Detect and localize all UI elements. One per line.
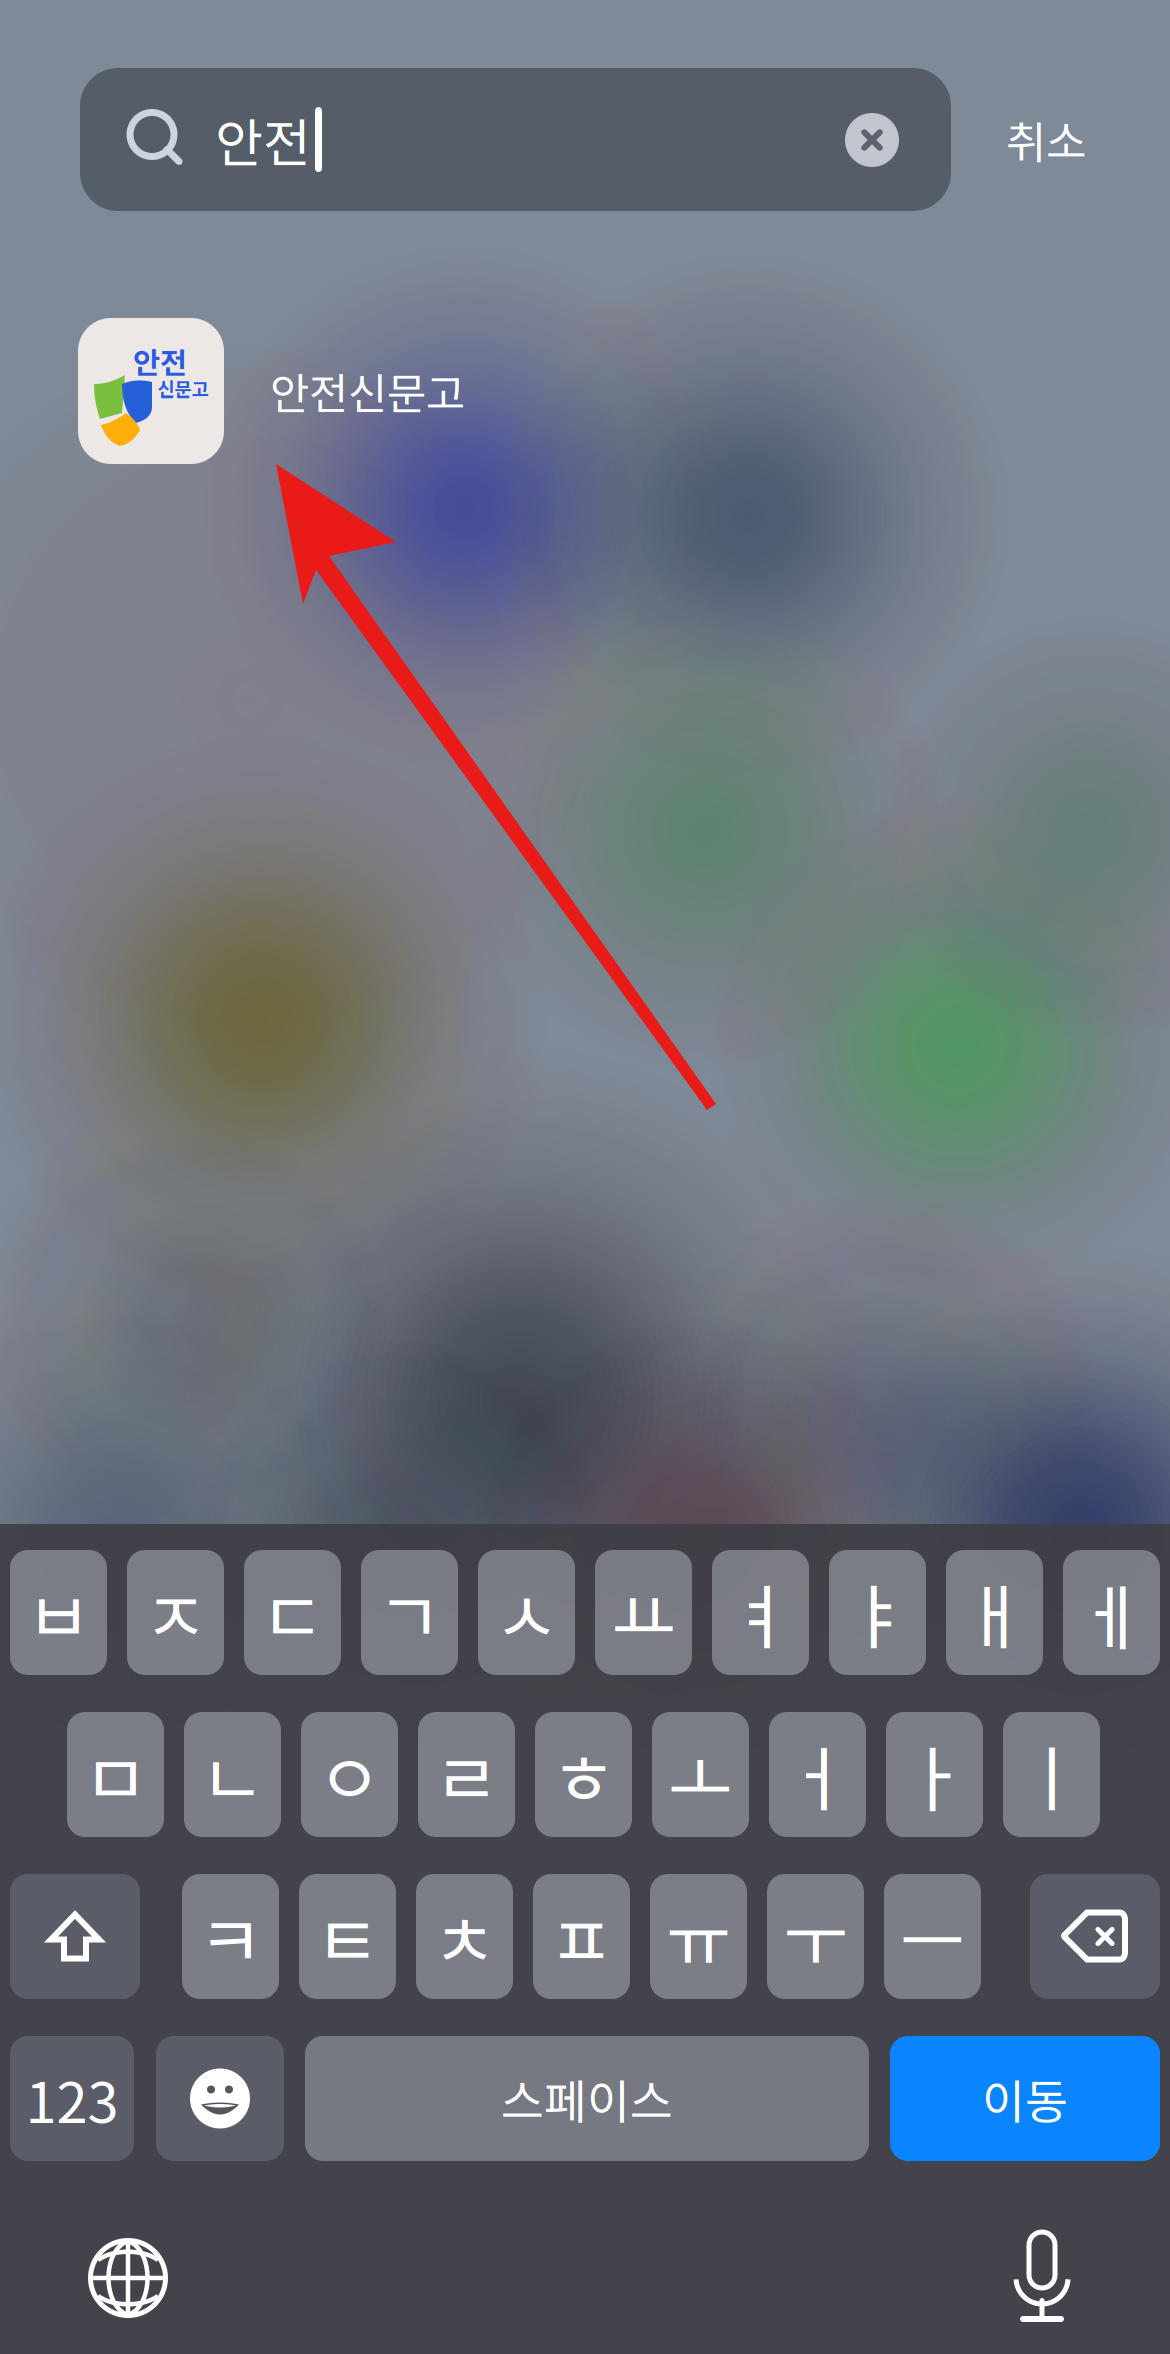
button[interactable]: ㅜ [767, 1874, 864, 1999]
button[interactable]: ㅋ [182, 1874, 279, 1999]
staticText: 안전신문고 [270, 360, 465, 422]
staticText: 스페이스 [501, 2065, 673, 2132]
staticText: ㅔ [1079, 1561, 1144, 1664]
staticText: 123 [25, 2058, 118, 2139]
button[interactable]: Switch keyboard [73, 2223, 183, 2333]
button[interactable]: 안전 [78, 316, 1090, 466]
button[interactable]: ㅡ [884, 1874, 981, 1999]
button[interactable]: ㅑ [829, 1550, 926, 1675]
staticText: ㅓ [785, 1723, 850, 1826]
staticText: ㅛ [611, 1561, 676, 1664]
button[interactable]: ㅣ [1003, 1712, 1100, 1837]
staticText: ㅗ [668, 1723, 733, 1826]
button[interactable]: Shift [10, 1874, 140, 1999]
staticText: ㅂ [26, 1561, 91, 1664]
button[interactable]: ㅗ [652, 1712, 749, 1837]
button[interactable]: 안전 [80, 68, 951, 211]
button[interactable]: ㅂ [10, 1550, 107, 1675]
button[interactable]: ㅓ [769, 1712, 866, 1837]
button[interactable]: ㅈ [127, 1550, 224, 1675]
button[interactable]: ㅁ [67, 1712, 164, 1837]
staticText: ㅌ [315, 1885, 380, 1988]
button[interactable]: Delete [1030, 1874, 1160, 1999]
button[interactable]: ㅊ [416, 1874, 513, 1999]
staticText: ㅠ [666, 1885, 731, 1988]
staticText: 취소 [1006, 107, 1086, 171]
staticText: ㅇ [317, 1723, 382, 1826]
staticText: ㄷ [260, 1561, 325, 1664]
staticText: ㄱ [377, 1561, 442, 1664]
staticText: 안전 [215, 102, 311, 177]
button[interactable]: ㅅ [478, 1550, 575, 1675]
staticText: ㅐ [962, 1561, 1027, 1664]
staticText: ㅡ [900, 1885, 965, 1988]
button[interactable]: ㄷ [244, 1550, 341, 1675]
button[interactable]: 123 [10, 2036, 134, 2161]
staticText: 이동 [982, 2065, 1068, 2132]
staticText: ㅅ [494, 1561, 559, 1664]
staticText: ㄴ [200, 1723, 265, 1826]
button[interactable]: 이동 [890, 2036, 1160, 2161]
staticText: ㅕ [728, 1561, 793, 1664]
staticText: ㅏ [902, 1723, 967, 1826]
staticText: ㅁ [83, 1723, 148, 1826]
staticText: ㅈ [143, 1561, 208, 1664]
button[interactable]: ㅛ [595, 1550, 692, 1675]
button[interactable]: ㅐ [946, 1550, 1043, 1675]
staticText: 안전 [133, 340, 187, 382]
button[interactable]: Dictation [987, 2221, 1097, 2331]
button[interactable]: ㅏ [886, 1712, 983, 1837]
button[interactable]: ㅎ [535, 1712, 632, 1837]
button[interactable]: ㅔ [1063, 1550, 1160, 1675]
button[interactable]: ㄹ [418, 1712, 515, 1837]
staticText: ㅊ [432, 1885, 497, 1988]
staticText: 신문고 [157, 374, 208, 401]
button[interactable]: 취소 [976, 89, 1116, 189]
staticText: ㄹ [434, 1723, 499, 1826]
button[interactable]: ㅍ [533, 1874, 630, 1999]
staticText: ㅎ [551, 1723, 616, 1826]
button[interactable]: ㅌ [299, 1874, 396, 1999]
button[interactable]: Clear search text [835, 103, 909, 177]
button[interactable]: Emoji [156, 2036, 284, 2161]
staticText: ㅑ [845, 1561, 910, 1664]
button[interactable]: ㅕ [712, 1550, 809, 1675]
button[interactable]: ㅠ [650, 1874, 747, 1999]
staticText: ㅜ [783, 1885, 848, 1988]
button[interactable]: ㅇ [301, 1712, 398, 1837]
staticText: ㅣ [1019, 1723, 1084, 1826]
button[interactable]: 스페이스 [305, 2036, 869, 2161]
staticText: ㅍ [549, 1885, 614, 1988]
button[interactable]: ㄱ [361, 1550, 458, 1675]
staticText: ㅋ [198, 1885, 263, 1988]
button[interactable]: ㄴ [184, 1712, 281, 1837]
